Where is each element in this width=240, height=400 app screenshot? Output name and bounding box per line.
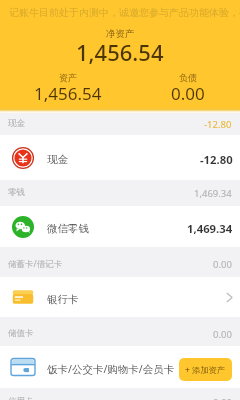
staticText: 负债	[179, 72, 197, 83]
staticText: 1,456.54	[76, 37, 164, 67]
staticText: 信用卡	[8, 396, 34, 400]
staticText: 记账牛目前处于内测中，诚邀您参与产品功能体验，有优	[9, 6, 240, 19]
staticText: 1,469.34	[194, 187, 232, 200]
staticText: 1,456.54	[34, 82, 102, 105]
staticText: 1,469.34	[187, 221, 233, 236]
staticText: 0.00	[213, 258, 232, 271]
staticText: 饭卡/公交卡/购物卡/会员卡	[47, 362, 175, 376]
staticText: + 添加资产	[185, 364, 226, 375]
staticText: 微信零钱	[47, 222, 89, 235]
staticText: 储蓄卡/借记卡	[8, 258, 63, 270]
staticText: 银行卡	[47, 293, 79, 306]
button[interactable]: 饭卡/公交卡/购物卡/会员卡	[0, 346, 240, 388]
staticText: 资产	[59, 72, 77, 83]
staticText: 储值卡	[8, 328, 34, 339]
staticText: 0.00	[213, 328, 232, 341]
staticText: 净资产	[106, 28, 135, 40]
button[interactable]: 微信零钱	[0, 206, 240, 247]
button[interactable]: 银行卡	[0, 277, 240, 317]
staticText: 零钱	[8, 187, 25, 198]
staticText: -12.80	[204, 118, 232, 131]
staticText: 0.00	[213, 396, 232, 400]
staticText: 现金	[47, 153, 68, 166]
staticText: 0.00	[171, 82, 205, 105]
staticText: -12.80	[200, 152, 233, 167]
button[interactable]: 现金	[0, 135, 240, 180]
staticText: 现金	[8, 118, 25, 129]
button[interactable]: + 添加资产	[179, 358, 232, 381]
other: 查看银行卡	[226, 292, 233, 303]
